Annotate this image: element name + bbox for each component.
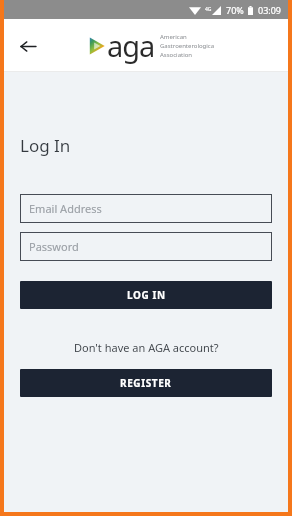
staticText: 03:09 [258,4,282,16]
button[interactable]: Email Address [20,194,272,223]
button[interactable]: Don't have an AGA account? [20,340,272,355]
staticText: Log In [20,134,71,157]
staticText: aga [107,26,155,65]
staticText: 70% [226,4,244,16]
button[interactable]: Password [20,232,272,261]
staticText: Association [160,51,193,59]
staticText: REGISTER [120,376,172,390]
staticText: Gastroenterologica [160,42,215,50]
staticText: LOG IN [127,288,166,302]
staticText: American [160,33,187,41]
staticText: Don't have an AGA account? [74,340,219,355]
button[interactable]: LOG IN [20,281,272,309]
staticText: Password [29,239,79,254]
button[interactable]: Back [11,29,45,63]
staticText: 4G [205,6,212,13]
staticText: Email Address [29,201,102,216]
button[interactable]: REGISTER [20,369,272,397]
